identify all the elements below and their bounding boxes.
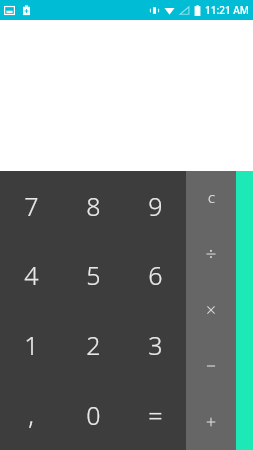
staticText: , [28, 398, 34, 432]
staticText: 6 [148, 258, 163, 292]
staticText: 3 [148, 328, 163, 362]
button[interactable]: Clear [186, 171, 236, 226]
staticText: 4 [24, 258, 39, 292]
button[interactable]: 2 [62, 310, 124, 380]
button[interactable]: 0 [62, 380, 124, 450]
button[interactable]: 8 [62, 171, 124, 240]
button[interactable]: 9 [124, 171, 186, 240]
staticText: 1 [24, 328, 39, 362]
staticText: 5 [86, 258, 101, 292]
button[interactable]: = [124, 380, 186, 450]
staticText: C [208, 191, 215, 206]
button[interactable]: 5 [62, 240, 124, 310]
staticText: 7 [24, 189, 39, 223]
staticText: 0 [86, 398, 101, 432]
button[interactable]: Plus [186, 394, 236, 450]
staticText: = [148, 398, 163, 432]
button[interactable]: , [0, 380, 62, 450]
button[interactable]: 4 [0, 240, 62, 310]
staticText: 11:21 AM [205, 3, 249, 17]
button[interactable]: Multiply [186, 282, 236, 338]
button[interactable]: 1 [0, 310, 62, 380]
button[interactable]: Divide [186, 226, 236, 282]
button[interactable]: Minus [186, 338, 236, 394]
button[interactable]: 6 [124, 240, 186, 310]
staticText: 2 [86, 328, 101, 362]
staticText: 8 [86, 189, 101, 223]
button[interactable]: 7 [0, 171, 62, 240]
staticText: 9 [148, 189, 163, 223]
button[interactable]: 3 [124, 310, 186, 380]
